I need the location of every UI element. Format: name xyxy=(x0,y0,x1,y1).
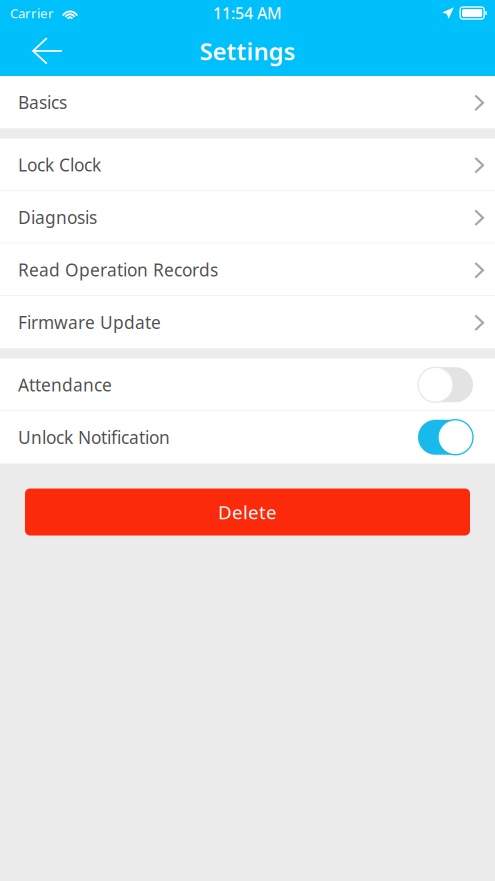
staticText: Attendance xyxy=(18,373,112,396)
staticText: Read Operation Records xyxy=(18,258,218,281)
staticText: Lock Clock xyxy=(18,153,101,176)
button[interactable]: Firmware Update xyxy=(0,296,495,348)
staticText: Settings xyxy=(199,35,295,67)
button[interactable]: Lock Clock xyxy=(0,138,495,191)
staticText: Carrier xyxy=(10,4,54,22)
button[interactable]: Basics xyxy=(0,76,495,128)
button[interactable]: Read Operation Records xyxy=(0,243,495,296)
staticText: Unlock Notification xyxy=(18,426,170,449)
staticText: Firmware Update xyxy=(18,311,161,334)
staticText: 11:54 AM xyxy=(213,2,282,24)
staticText: Diagnosis xyxy=(18,206,97,229)
button[interactable]: Diagnosis xyxy=(0,191,495,243)
button[interactable]: Back xyxy=(17,26,78,76)
staticText: Basics xyxy=(18,91,67,114)
staticText: Delete xyxy=(218,500,277,524)
button[interactable]: Delete xyxy=(25,488,470,535)
button[interactable]: Unlock Notification xyxy=(0,411,495,463)
button[interactable]: Attendance xyxy=(0,358,495,411)
